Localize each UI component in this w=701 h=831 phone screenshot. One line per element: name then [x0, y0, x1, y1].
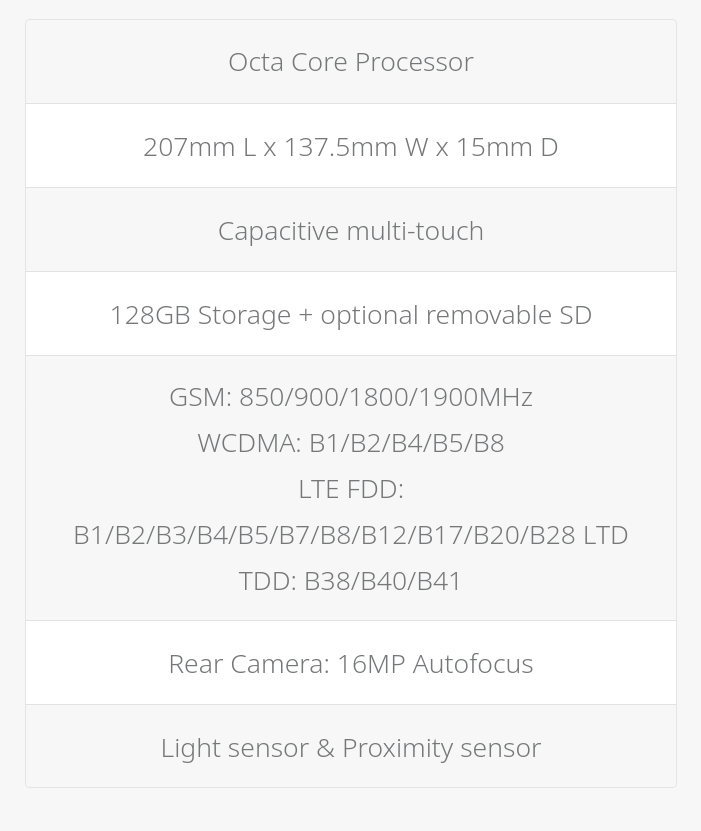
staticText: GSM: 850/900/1800/1900MHz WCDMA: B1/B2/B…	[35, 378, 667, 598]
staticText: Octa Core Processor	[35, 43, 667, 79]
staticText: 207mm L x 137.5mm W x 15mm D	[35, 128, 667, 164]
staticText: 128GB Storage + optional removable SD	[35, 296, 667, 332]
button[interactable]: Octa Core Processor	[25, 19, 677, 103]
staticText: Rear Camera: 16MP Autofocus	[35, 645, 667, 681]
button[interactable]: Light sensor & Proximity sensor	[25, 705, 677, 788]
staticText: Light sensor & Proximity sensor	[35, 729, 667, 765]
button[interactable]: 207mm L x 137.5mm W x 15mm D	[25, 104, 677, 187]
staticText: Capacitive multi-touch	[35, 212, 667, 248]
button[interactable]: 128GB Storage + optional removable SD	[25, 272, 677, 355]
button[interactable]: GSM: 850/900/1800/1900MHz WCDMA: B1/B2/B…	[25, 356, 677, 620]
button[interactable]: Rear Camera: 16MP Autofocus	[25, 621, 677, 704]
button[interactable]: Capacitive multi-touch	[25, 188, 677, 271]
